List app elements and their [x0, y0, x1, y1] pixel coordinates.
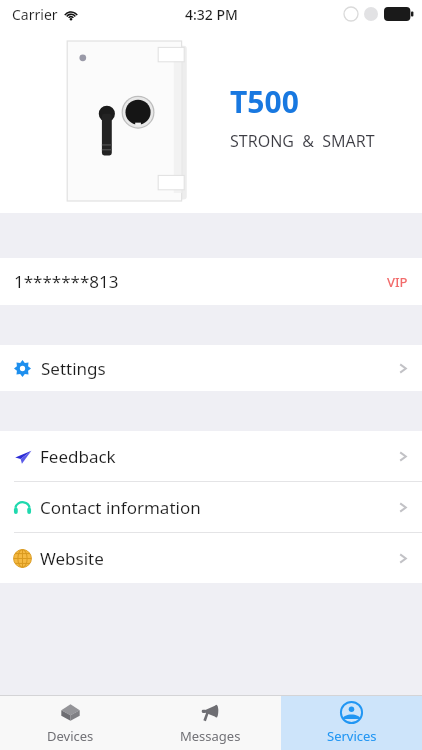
- button[interactable]: Settings: [0, 345, 422, 391]
- staticText: VIP: [387, 273, 408, 291]
- staticText: Devices: [47, 727, 94, 745]
- button[interactable]: Website: [0, 533, 422, 583]
- staticText: Messages: [180, 727, 241, 745]
- staticText: Feedback: [40, 445, 116, 468]
- button[interactable]: Messages: [140, 696, 281, 750]
- button[interactable]: Contact information: [0, 482, 422, 532]
- button[interactable]: Devices: [0, 696, 140, 750]
- staticText: 4:32 PM: [185, 5, 238, 24]
- button[interactable]: Feedback: [0, 431, 422, 481]
- staticText: STRONG & SMART: [230, 130, 375, 152]
- staticText: Website: [40, 547, 104, 570]
- button[interactable]: 1*******813: [0, 258, 422, 305]
- staticText: 1*******813: [14, 270, 119, 293]
- staticText: T500: [230, 81, 299, 122]
- staticText: Services: [327, 727, 377, 745]
- staticText: Carrier: [12, 5, 58, 24]
- staticText: Settings: [41, 357, 106, 380]
- button[interactable]: Services: [281, 696, 422, 750]
- staticText: Contact information: [40, 496, 201, 519]
